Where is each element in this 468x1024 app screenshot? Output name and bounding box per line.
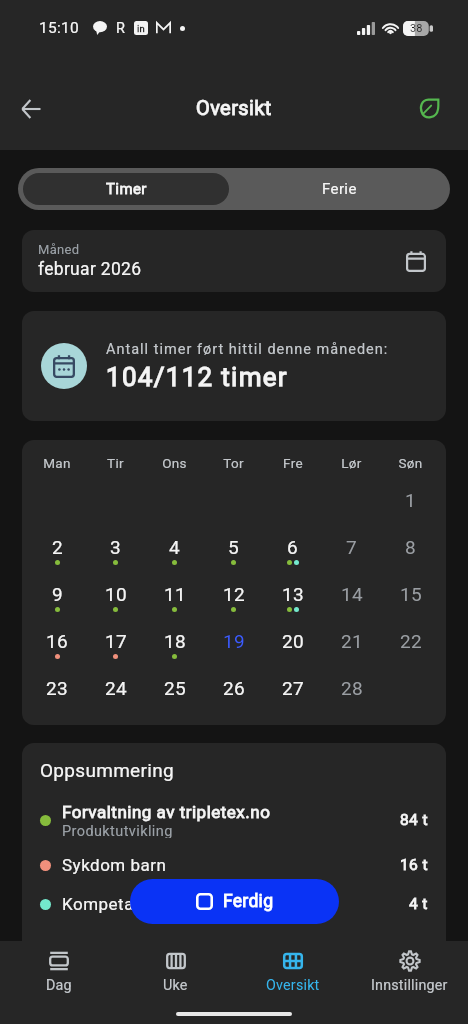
button[interactable]: Oversikt [234,941,351,1003]
button[interactable]: 23 [28,677,86,724]
staticText: 22 [400,630,422,652]
button[interactable]: 19 [204,630,263,677]
staticText: Dag [46,977,72,994]
button[interactable]: Ferie [229,168,450,210]
staticText: Ons [162,455,187,471]
staticText: 27 [282,677,304,699]
staticText: 38 [410,22,423,35]
staticText: 1 [405,489,416,511]
staticText: Produktutvikling [62,823,173,838]
staticText: 8 [405,536,416,558]
staticText: Uke [163,977,188,994]
staticText: Forvaltning av tripletex.no [62,802,271,822]
button[interactable]: 22 [381,630,440,677]
button[interactable]: 12 [204,583,263,630]
button[interactable]: 2 [28,536,86,583]
staticText: 3 [110,536,121,558]
button[interactable]: 17 [86,630,145,677]
staticText: 4 [169,536,180,558]
staticText: 20 [282,630,304,652]
button[interactable]: 25 [145,677,204,724]
staticText: Oversikt [196,96,272,119]
button[interactable]: Innstillinger [351,941,468,1003]
staticText: 17 [105,630,127,652]
staticText: 23 [46,677,68,699]
staticText: Sykdom barn [62,855,167,875]
staticText: Tor [223,455,244,471]
staticText: Lør [341,455,362,471]
button[interactable]: 8 [381,536,440,583]
button[interactable]: 18 [145,630,204,677]
staticText: 9 [52,583,63,605]
staticText: Man [43,455,71,471]
button[interactable]: 6 [263,536,322,583]
staticText: Oppsummering [40,759,174,781]
staticText: Innstillinger [371,977,448,994]
staticText: 12 [223,583,245,605]
button[interactable]: Sykdom barn [40,854,428,876]
button[interactable]: 21 [322,630,381,677]
button[interactable]: 16 [28,630,86,677]
button[interactable]: 7 [322,536,381,583]
button[interactable]: Dag [0,941,117,1003]
button[interactable]: 4 [145,536,204,583]
staticText: 2 [52,536,63,558]
button[interactable]: 3 [86,536,145,583]
staticText: Oversikt [266,977,320,994]
staticText: Søn [398,455,423,471]
button[interactable]: 20 [263,630,322,677]
button[interactable]: Timer [23,173,229,205]
staticText: 5 [228,536,239,558]
staticText: Måned [38,242,80,257]
button[interactable]: Miljovennlig [413,92,445,124]
button[interactable]: Uke [117,941,234,1003]
button[interactable]: Ferdig [130,879,339,924]
staticText: 25 [164,677,186,699]
staticText: Tir [107,455,124,471]
button[interactable]: 24 [86,677,145,724]
staticText: Ferdig [223,891,274,912]
staticText: Kompetanseutvikling [62,894,231,914]
button[interactable]: 28 [322,677,381,724]
staticText: 15:10 [39,19,80,37]
staticText: 21 [341,630,363,652]
button[interactable]: 14 [322,583,381,630]
button[interactable]: Kompetanseutvikling [40,893,428,915]
staticText: Timer [106,180,147,198]
staticText: 4 t [409,895,428,913]
staticText: 13 [282,583,304,605]
staticText: 24 [105,677,127,699]
staticText: 10 [105,583,127,605]
staticText: 15 [400,583,422,605]
staticText: 84 t [400,811,428,829]
staticText: 16 [46,630,68,652]
button[interactable]: 10 [86,583,145,630]
staticText: 7 [346,536,357,558]
staticText: 28 [341,677,363,699]
button[interactable]: Tilbake [13,91,49,127]
button[interactable]: 13 [263,583,322,630]
button[interactable]: 11 [145,583,204,630]
staticText: Ferie [322,180,357,198]
staticText: 14 [341,583,363,605]
button[interactable]: 26 [204,677,263,724]
button[interactable]: 5 [204,536,263,583]
button[interactable]: 15 [381,583,440,630]
staticText: 11 [164,583,186,605]
button[interactable]: Forvaltning av tripletex.no [40,802,428,838]
staticText: Antall timer ført hittil denne måneden: [106,341,389,358]
staticText: 19 [223,630,245,652]
staticText: 6 [287,536,298,558]
staticText: 26 [223,677,245,699]
button[interactable]: 9 [28,583,86,630]
staticText: R [116,20,126,37]
staticText: 18 [164,630,186,652]
button[interactable]: Antall timer ført hittil denne måneden: [22,311,446,421]
staticText: Fre [283,455,303,471]
staticText: in [137,23,146,34]
button[interactable]: 27 [263,677,322,724]
staticText: 104/112 timer [106,362,288,392]
button[interactable]: Måned [22,230,446,292]
button[interactable]: 1 [381,489,440,536]
staticText: februar 2026 [38,259,142,280]
